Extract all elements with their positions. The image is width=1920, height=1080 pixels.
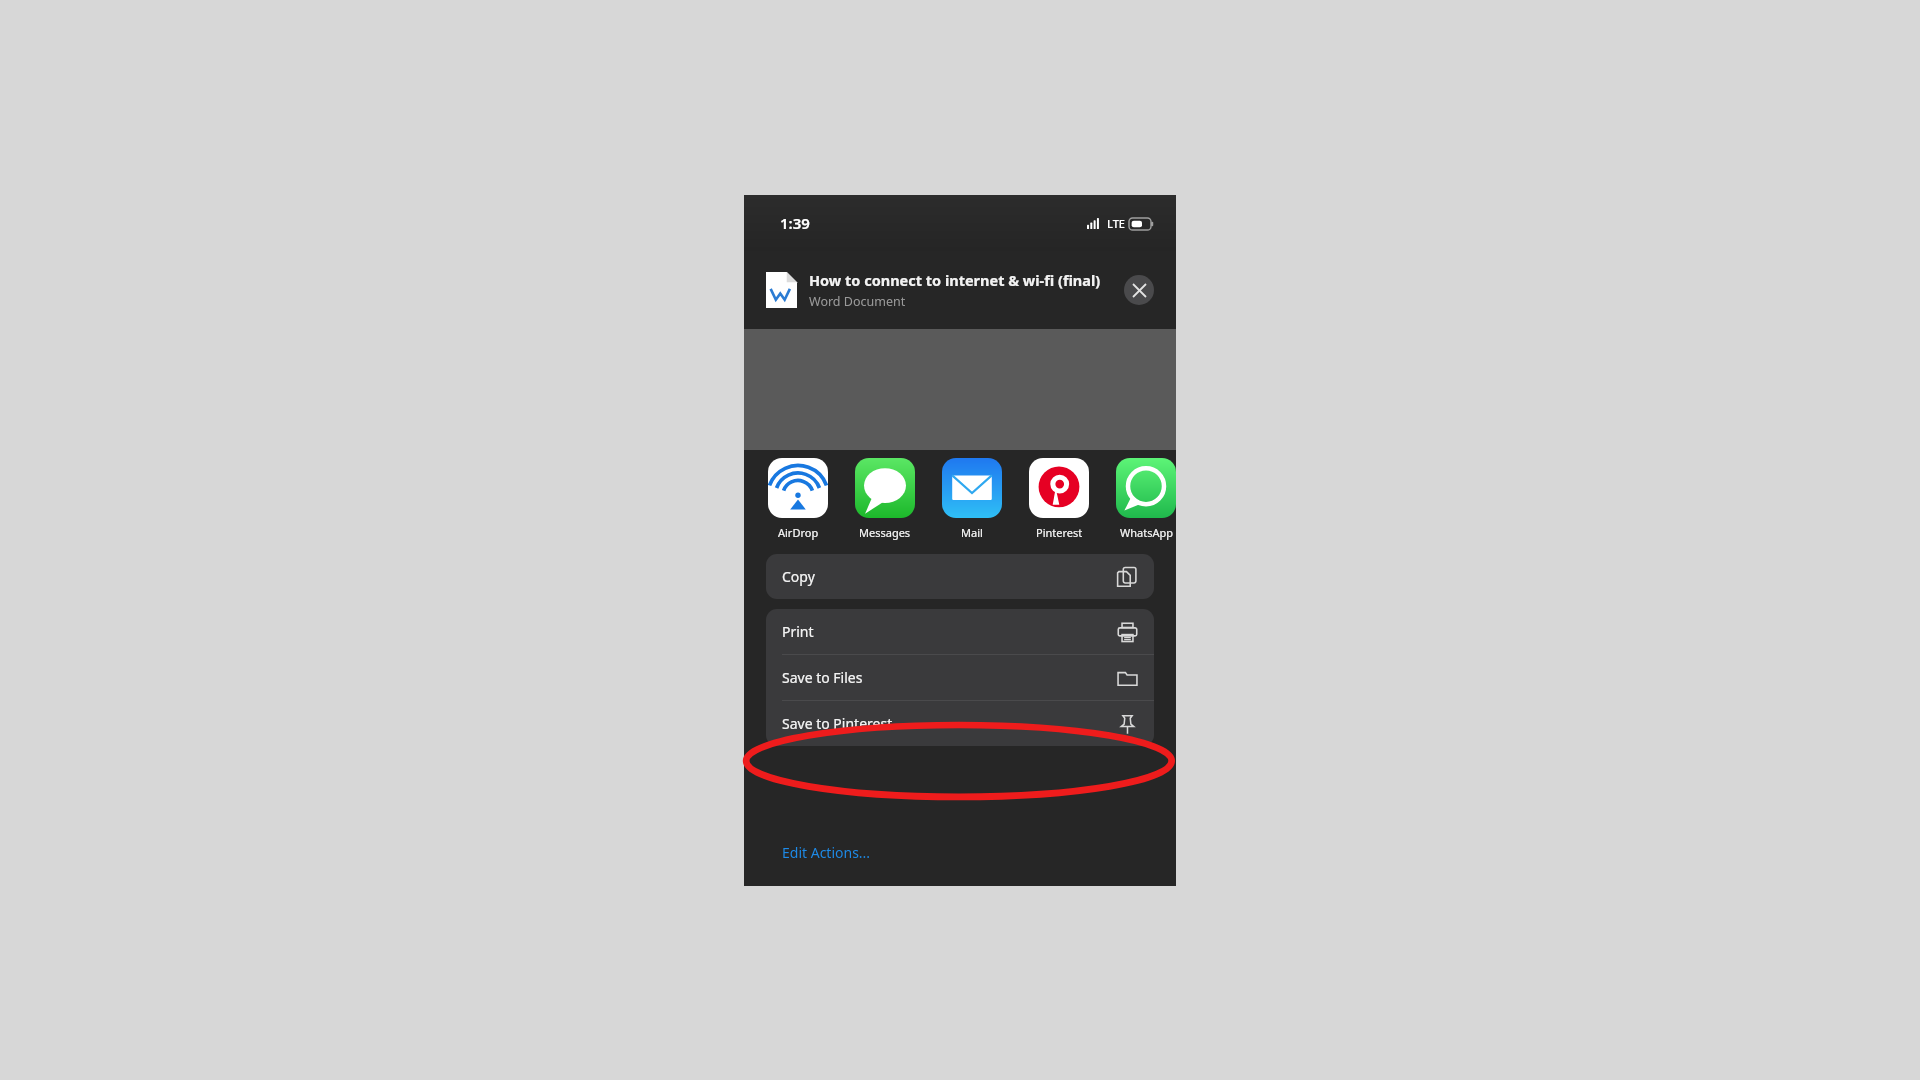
button[interactable]: Messages (855, 458, 915, 540)
button[interactable]: Save to Files (766, 655, 1154, 700)
staticText: Print (782, 622, 814, 641)
staticText: Copy (782, 567, 815, 586)
button[interactable]: Close (1124, 275, 1154, 305)
button[interactable]: Mail (942, 458, 1002, 540)
staticText: Word Document (809, 293, 906, 310)
button[interactable]: Print (766, 609, 1154, 654)
staticText: Save to Pinterest (782, 714, 893, 733)
staticText: Pinterest (1036, 525, 1083, 540)
staticText: Save to Files (782, 668, 863, 687)
staticText: Edit Actions... (782, 843, 871, 862)
staticText: How to connect to internet & wi-fi (fina… (809, 270, 1101, 290)
staticText: Messages (859, 525, 911, 540)
staticText: WhatsApp (1120, 525, 1173, 540)
button[interactable]: Copy (766, 554, 1154, 599)
button[interactable]: Edit Actions... (744, 832, 1176, 872)
staticText: Mail (961, 525, 983, 540)
button[interactable]: AirDrop (768, 458, 828, 540)
staticText: 1:39 (780, 213, 810, 233)
staticText: LTE (1107, 216, 1125, 231)
staticText: AirDrop (778, 525, 819, 540)
button[interactable]: Save to Pinterest (766, 701, 1154, 746)
button[interactable]: WhatsApp (1116, 458, 1176, 540)
button[interactable]: How to connect to internet & wi-fi (fina… (744, 251, 1176, 329)
button[interactable]: Pinterest (1029, 458, 1089, 540)
